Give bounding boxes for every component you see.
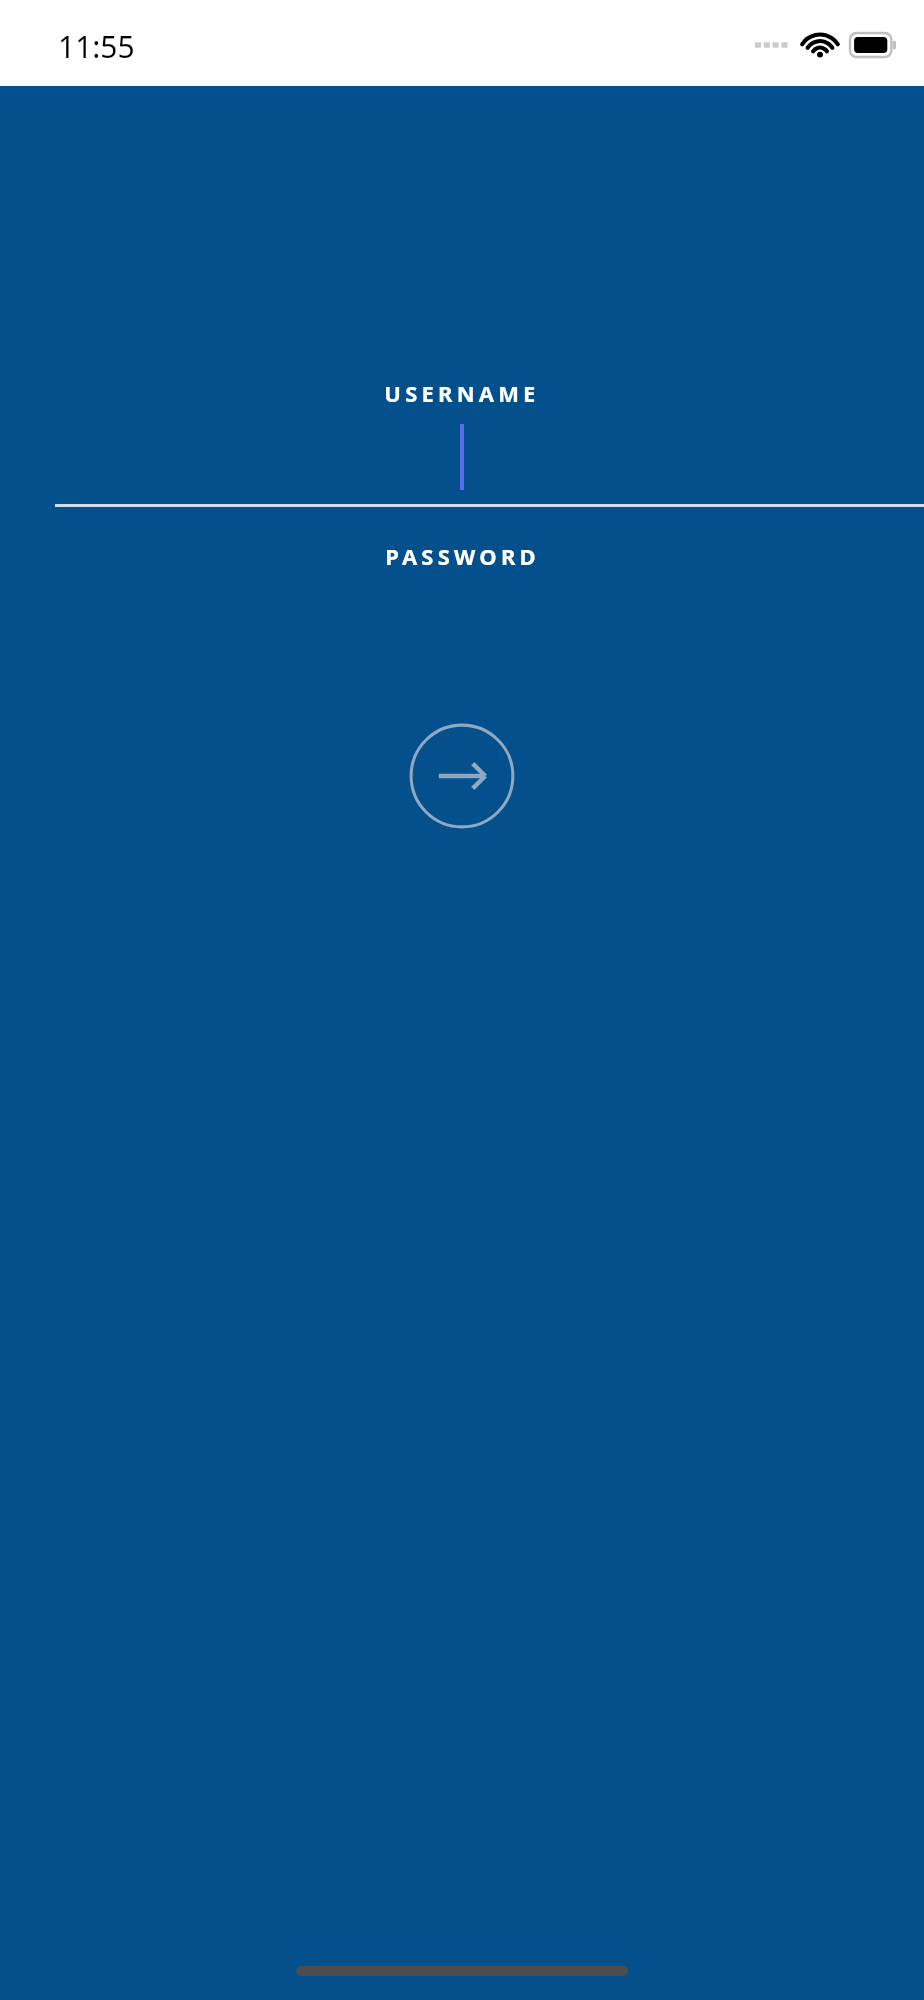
staticText: 11:55 (58, 26, 135, 67)
staticText: PASSWORD (385, 541, 540, 571)
staticText: USERNAME (384, 378, 540, 408)
button[interactable]: USERNAME (0, 378, 924, 408)
button[interactable]: Submit (408, 722, 516, 830)
button[interactable]: PASSWORD (0, 541, 924, 571)
